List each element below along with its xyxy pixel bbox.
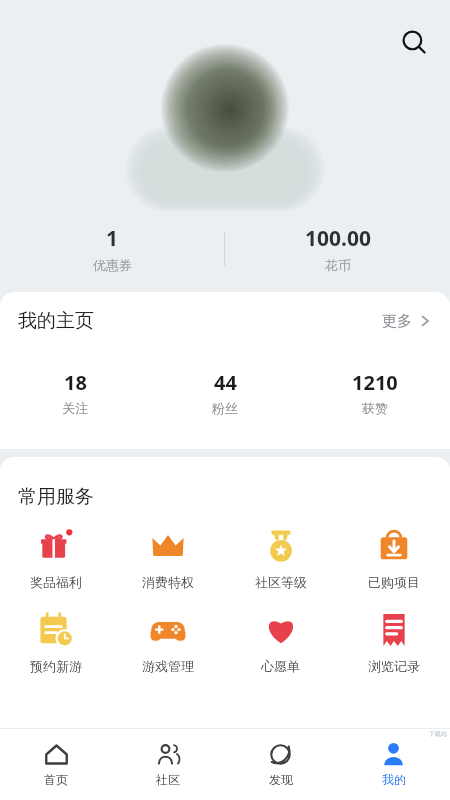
staticText: 预约新游 <box>30 658 82 674</box>
staticText: 奖品福利 <box>30 574 82 590</box>
staticText: 游戏管理 <box>142 658 194 674</box>
button[interactable]: 1210 <box>300 367 450 418</box>
staticText: 我的主页 <box>18 309 94 333</box>
staticText: 更多 <box>382 312 412 331</box>
button[interactable]: 游戏管理 <box>112 607 224 678</box>
staticText: 粉丝 <box>212 400 238 416</box>
staticText: 优惠券 <box>93 257 132 273</box>
button[interactable]: 心愿单 <box>224 607 337 678</box>
staticText: 100.00 <box>305 224 371 253</box>
button[interactable]: 我的 <box>337 728 450 800</box>
staticText: 首页 <box>44 772 68 787</box>
button[interactable]: 奖品福利 <box>0 523 112 594</box>
button[interactable]: Search <box>393 21 437 65</box>
button[interactable]: 预约新游 <box>0 607 112 678</box>
staticText: 消费特权 <box>142 574 194 590</box>
button[interactable]: 浏览记录 <box>337 607 450 678</box>
staticText: 1 <box>106 224 119 253</box>
button[interactable]: 100.00 <box>225 220 450 277</box>
staticText: 浏览记录 <box>368 658 420 674</box>
staticText: 社区 <box>156 772 180 787</box>
staticText: 18 <box>64 369 87 396</box>
staticText: 心愿单 <box>261 658 300 674</box>
staticText: 获赞 <box>362 400 388 416</box>
button[interactable]: 1 <box>0 220 224 277</box>
staticText: 我的 <box>382 772 406 787</box>
staticText: 44 <box>214 369 237 396</box>
staticText: 发现 <box>269 772 293 787</box>
button[interactable]: 社区 <box>112 728 224 800</box>
button[interactable]: 发现 <box>224 728 337 800</box>
button[interactable]: 我的主页 <box>0 292 450 350</box>
button[interactable]: 44 <box>150 367 300 418</box>
staticText: 常用服务 <box>18 485 94 509</box>
button[interactable]: 18 <box>0 367 150 418</box>
staticText: 社区等级 <box>255 574 307 590</box>
button[interactable]: 社区等级 <box>224 523 337 594</box>
staticText: 关注 <box>62 400 88 416</box>
staticText: 下载站 <box>429 730 447 738</box>
button[interactable]: 已购项目 <box>337 523 450 594</box>
button[interactable]: 消费特权 <box>112 523 224 594</box>
staticText: 花币 <box>325 257 351 273</box>
button[interactable]: 首页 <box>0 728 112 800</box>
staticText: 1210 <box>352 369 398 396</box>
staticText: 已购项目 <box>368 574 420 590</box>
